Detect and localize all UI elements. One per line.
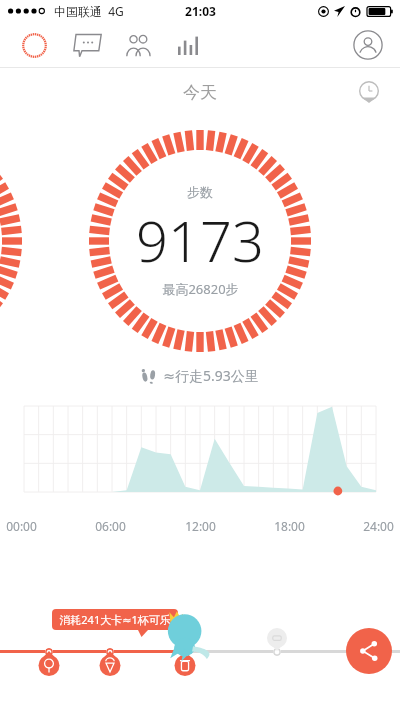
button[interactable]: Reward 1 [99,651,121,677]
staticText: 中国联通 [54,4,102,19]
button[interactable]: 消耗241大卡≈1杯可乐 [52,609,178,637]
staticText: ≈行走5.93公里 [163,366,259,385]
button[interactable]: Share [346,628,392,674]
button[interactable]: Statistics [168,25,208,65]
button[interactable]: Location [352,75,386,109]
staticText: 4G [108,3,124,19]
staticText: 消耗241大卡≈1杯可乐 [59,612,171,627]
button[interactable]: Profile [348,25,388,65]
button[interactable]: Reward 2 [174,651,196,677]
staticText: 12:00 [185,518,216,534]
button[interactable]: Reward 0 [38,651,60,677]
staticText: 今天 [183,82,217,103]
staticText: 步数 [187,184,213,200]
button[interactable]: Activity ring [14,25,54,65]
staticText: 00:00 [6,518,37,534]
staticText: 24:00 [363,518,394,534]
button[interactable]: 00:00 [0,398,400,538]
staticText: 06:00 [95,518,126,534]
staticText: 21:03 [185,3,216,19]
button[interactable]: 步数 [89,130,311,352]
button[interactable]: ≈行走5.93公里 [142,366,259,385]
button[interactable]: Messages [68,25,108,65]
button[interactable]: Locked milestone [266,626,288,652]
staticText: 9173 [136,202,264,278]
button[interactable]: Mascot [160,610,216,658]
button[interactable]: Friends [118,25,158,65]
staticText: 最高26820步 [162,280,239,298]
staticText: 18:00 [274,518,305,534]
